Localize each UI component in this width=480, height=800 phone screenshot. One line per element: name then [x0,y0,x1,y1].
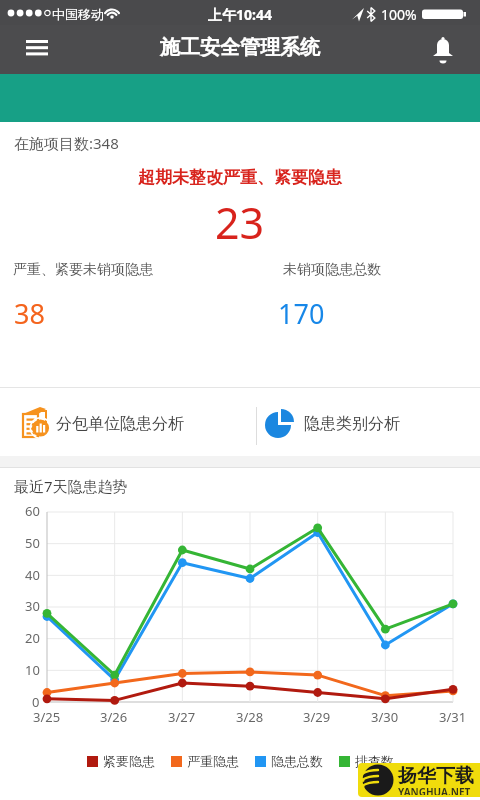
staticText: 超期未整改严重、紧要隐患 [138,167,342,188]
staticText: 3/25 [33,708,61,726]
staticText: 严重隐患 [187,753,239,769]
staticText: 分包单位隐患分析 [56,414,184,434]
staticText: 10 [25,661,40,679]
staticText: 60 [25,502,40,520]
staticText: 中国移动 [52,6,104,22]
staticText: 紧要隐患 [103,753,155,769]
staticText: 排查数 [355,753,394,769]
button[interactable] [423,29,463,69]
staticText: 扬华下载 [398,764,474,788]
button[interactable] [257,388,480,456]
staticText: 3/26 [100,708,128,726]
staticText: 40 [25,566,40,584]
staticText: 严重、紧要未销项隐患 [13,261,153,279]
staticText: 20 [25,629,40,647]
button[interactable]: 扬华下载 [358,763,480,797]
staticText: 23 [215,193,265,252]
button[interactable] [16,29,58,69]
staticText: 最近7天隐患趋势 [14,476,128,496]
staticText: 50 [25,534,40,552]
staticText: 3/31 [439,708,467,726]
staticText: 未销项隐患总数 [283,261,381,279]
staticText: 在施项目数:348 [14,133,119,153]
staticText: 30 [25,597,40,615]
staticText: 100% [381,5,417,24]
staticText: 3/30 [371,708,399,726]
staticText: 170 [278,295,325,332]
staticText: 3/29 [303,708,331,726]
button[interactable] [0,388,256,456]
staticText: 施工安全管理系统 [160,35,320,60]
staticText: 隐患类别分析 [304,414,400,434]
staticText: 3/28 [236,708,264,726]
staticText: 38 [14,295,45,332]
staticText: 0 [32,693,40,711]
staticText: 隐患总数 [271,753,323,769]
staticText: 上午10:44 [208,5,272,24]
staticText: YANGHUA.NET [398,785,471,795]
staticText: 3/27 [168,708,196,726]
